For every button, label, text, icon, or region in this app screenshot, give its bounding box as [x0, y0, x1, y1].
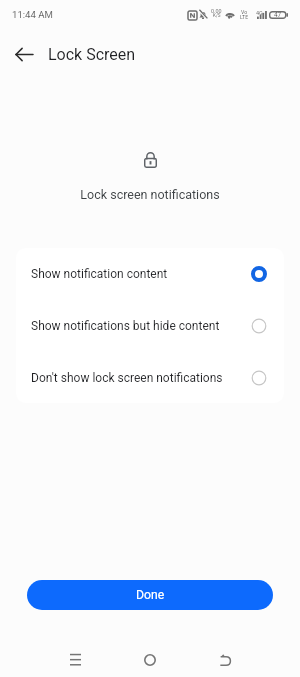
staticText: 0.00	[211, 8, 222, 14]
button[interactable]: Done	[27, 580, 273, 610]
staticText: 4G	[256, 10, 263, 16]
staticText: Show notification content	[31, 267, 245, 281]
button[interactable]: Back	[8, 38, 40, 70]
button[interactable]: Recent apps	[55, 641, 95, 677]
staticText: 11:44 AM	[12, 9, 53, 20]
button[interactable]: Home	[130, 641, 170, 677]
button[interactable]: Show notification content	[16, 248, 284, 300]
staticText: Done	[136, 588, 165, 602]
staticText: Show notifications but hide content	[31, 319, 245, 333]
button[interactable]: Show notifications but hide content	[16, 300, 284, 352]
button[interactable]: Back	[205, 641, 245, 677]
staticText: Don't show lock screen notifications	[31, 371, 245, 385]
staticText: Lock screen notifications	[0, 187, 300, 202]
staticText: Lock Screen	[48, 45, 136, 64]
staticText: K/S	[213, 13, 221, 18]
staticText: LTE	[240, 14, 249, 20]
staticText: Vo	[241, 9, 248, 15]
staticText: 47	[274, 11, 282, 19]
button[interactable]: Don't show lock screen notifications	[16, 352, 284, 403]
